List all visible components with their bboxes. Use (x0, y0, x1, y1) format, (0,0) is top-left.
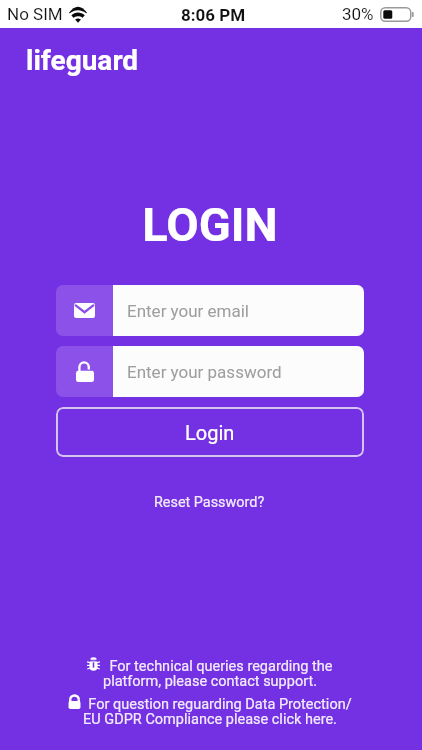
staticText: No SIM (7, 4, 63, 24)
other: Password (76, 362, 94, 382)
staticText: 30% (342, 4, 374, 24)
staticText: platform, please contact support. (103, 673, 317, 690)
button[interactable]: Login (56, 407, 364, 457)
staticText: 8:06 PM (181, 5, 246, 25)
other: Email (74, 303, 95, 318)
button[interactable]: For question reguarding Data Protection/ (0, 696, 421, 730)
staticText: lifeguard (26, 44, 139, 77)
staticText: Login (185, 421, 235, 444)
staticText: For technical queries regarding the (109, 658, 333, 675)
staticText: LOGIN (0, 197, 421, 252)
staticText: Enter your password (127, 362, 282, 382)
button[interactable]: Email (56, 285, 364, 336)
button[interactable]: Reset Password? (146, 489, 273, 516)
button[interactable]: For technical queries regarding the (0, 658, 421, 692)
staticText: Enter your email (127, 301, 250, 321)
staticText: For question reguarding Data Protection/ (88, 696, 352, 713)
staticText: EU GDPR Compliance please click here. (83, 711, 337, 728)
button[interactable]: Password (56, 346, 364, 397)
